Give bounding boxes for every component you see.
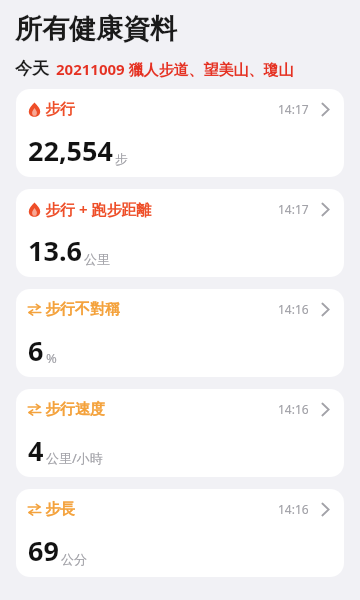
staticText: 公里 bbox=[84, 251, 110, 267]
staticText: 步行 bbox=[45, 100, 75, 119]
button[interactable]: 步行 bbox=[16, 89, 344, 177]
staticText: 步 bbox=[115, 151, 128, 167]
staticText: 14:16 bbox=[278, 401, 309, 417]
staticText: 13.6 bbox=[28, 232, 82, 269]
staticText: 今天 bbox=[15, 58, 49, 79]
button[interactable]: 查看詳細資料 bbox=[318, 499, 332, 519]
staticText: 步行不對稱 bbox=[45, 300, 120, 319]
staticText: 20211009 獵人步道、望美山、瓊山 bbox=[56, 59, 294, 79]
staticText: 69 bbox=[28, 532, 59, 569]
staticText: 22,554 bbox=[28, 132, 113, 169]
staticText: 公里/小時 bbox=[46, 449, 103, 467]
button[interactable]: 查看詳細資料 bbox=[318, 199, 332, 219]
staticText: 所有健康資料 bbox=[15, 12, 177, 46]
button[interactable]: 查看詳細資料 bbox=[318, 399, 332, 419]
button[interactable]: 步行速度 bbox=[16, 389, 344, 477]
staticText: 4 bbox=[28, 432, 44, 469]
staticText: 步長 bbox=[45, 500, 75, 519]
button[interactable]: 查看詳細資料 bbox=[318, 299, 332, 319]
button[interactable]: 查看詳細資料 bbox=[318, 99, 332, 119]
staticText: 14:17 bbox=[278, 201, 309, 217]
button[interactable]: 步行不對稱 bbox=[16, 289, 344, 377]
staticText: 6 bbox=[28, 332, 44, 369]
button[interactable]: 步長 bbox=[16, 489, 344, 577]
staticText: 公分 bbox=[61, 551, 87, 567]
staticText: 步行 + 跑步距離 bbox=[45, 199, 152, 219]
staticText: 步行速度 bbox=[45, 400, 105, 419]
staticText: % bbox=[46, 349, 57, 367]
staticText: 14:16 bbox=[278, 501, 309, 517]
staticText: 14:16 bbox=[278, 301, 309, 317]
button[interactable]: 步行 + 跑步距離 bbox=[16, 189, 344, 277]
staticText: 14:17 bbox=[278, 101, 309, 117]
